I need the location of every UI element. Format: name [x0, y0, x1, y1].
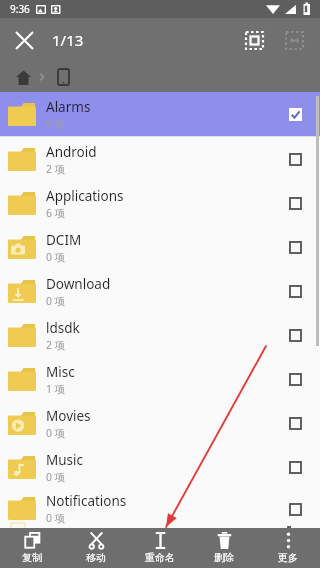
staticText: 移动 — [86, 551, 106, 564]
button[interactable]: Not selected — [280, 452, 310, 482]
staticText: 0 项 — [46, 470, 66, 484]
button[interactable]: DCIM — [0, 225, 320, 269]
button[interactable]: 重命名 — [128, 532, 192, 564]
button[interactable]: 删除 — [192, 532, 256, 564]
button[interactable]: Not selected — [280, 276, 310, 306]
button[interactable]: Music — [0, 445, 320, 489]
button[interactable]: Not selected — [280, 364, 310, 394]
button[interactable]: Download — [0, 269, 320, 313]
button[interactable]: Notifications — [0, 489, 320, 528]
button[interactable]: Not selected — [280, 188, 310, 218]
button[interactable]: Not selected — [280, 320, 310, 350]
staticText: 1 项 — [46, 382, 66, 396]
staticText: Notifications — [46, 492, 127, 510]
button[interactable]: Not selected — [280, 408, 310, 438]
staticText: 0 项 — [46, 117, 66, 131]
staticText: Music — [46, 451, 84, 469]
button[interactable]: Misc — [0, 357, 320, 401]
staticText: Movies — [46, 407, 91, 425]
staticText: Misc — [46, 363, 75, 381]
button[interactable]: Selected — [280, 99, 310, 129]
button[interactable]: Select all — [234, 20, 274, 60]
button[interactable]: Not selected — [280, 494, 310, 524]
staticText: 9:36 — [10, 2, 30, 16]
button[interactable]: Movies — [0, 401, 320, 445]
staticText: Alarms — [46, 98, 91, 116]
staticText: 0 项 — [46, 511, 66, 525]
staticText: 6 项 — [46, 206, 66, 220]
staticText: 1/13 — [52, 30, 84, 50]
staticText: ldsdk — [46, 319, 80, 337]
staticText: 0 项 — [46, 426, 66, 440]
staticText: Applications — [46, 187, 124, 205]
staticText: 2 项 — [46, 338, 66, 352]
staticText: 0 项 — [46, 250, 66, 264]
staticText: DCIM — [46, 231, 82, 249]
staticText: Download — [46, 275, 111, 293]
staticText: 重命名 — [145, 551, 175, 564]
button[interactable]: 复制 — [0, 532, 64, 564]
staticText: 2 项 — [46, 162, 66, 176]
staticText: 0 项 — [46, 294, 66, 308]
staticText: 删除 — [214, 551, 234, 564]
button[interactable]: Alarms — [0, 92, 320, 136]
button[interactable]: 移动 — [64, 532, 128, 564]
staticText: 更多 — [278, 551, 298, 564]
button[interactable]: Select range — [274, 20, 314, 60]
staticText: 复制 — [22, 551, 42, 564]
button[interactable]: Internal storage — [50, 64, 76, 90]
staticText: Android — [46, 143, 97, 161]
button[interactable]: Applications — [0, 181, 320, 225]
button[interactable]: Home — [10, 64, 36, 90]
button[interactable]: Not selected — [280, 144, 310, 174]
button[interactable]: 更多 — [256, 532, 320, 564]
button[interactable]: Android — [0, 137, 320, 181]
button[interactable]: Not selected — [280, 232, 310, 262]
button[interactable]: ldsdk — [0, 313, 320, 357]
button[interactable]: Close selection — [4, 20, 44, 60]
